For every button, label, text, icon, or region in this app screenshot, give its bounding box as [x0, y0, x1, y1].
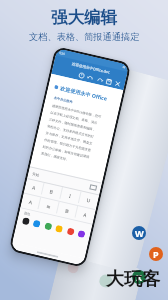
button[interactable]: Toolbar action — [77, 71, 85, 79]
staticText: 件的管理。我们致力于为您提供更 — [44, 138, 91, 152]
staticText: A — [82, 212, 88, 219]
button[interactable]: Colour swatch — [55, 225, 63, 233]
staticText: A — [31, 184, 37, 192]
staticText: 永中办公软件 — [53, 96, 74, 104]
staticText: A — [28, 199, 33, 207]
staticText: U — [86, 197, 91, 205]
button[interactable]: Toolbar action — [113, 79, 121, 87]
button[interactable]: Colour swatch — [66, 227, 75, 236]
button[interactable]: Open W app — [132, 226, 146, 240]
button[interactable]: Format option — [60, 187, 81, 205]
button[interactable]: Format option — [41, 183, 62, 201]
staticText: 欢迎使用永中Office.doc — [71, 61, 111, 75]
button[interactable]: Format option — [20, 193, 40, 211]
staticText: 三种文件，随时随地查看和编辑， — [48, 117, 96, 132]
staticText: 大玩客 — [106, 268, 160, 291]
staticText: 以在手机上处理文档、表格、演示 — [50, 110, 98, 125]
staticText: W — [135, 227, 144, 239]
button[interactable]: Colour swatch — [77, 230, 86, 238]
staticText: ≡ — [46, 203, 52, 210]
staticText: 9:30 — [59, 51, 65, 56]
staticText: 强大编辑 — [51, 7, 117, 28]
button[interactable]: Toolbar action — [96, 75, 104, 83]
staticText: 感谢您使用永中Office移动版，您可 — [52, 104, 102, 119]
button[interactable]: Format option — [78, 191, 99, 209]
staticText: P — [153, 248, 159, 260]
staticText: 开与保存，支持本地文件、网盘文 — [45, 131, 93, 146]
button[interactable]: Format option — [56, 202, 77, 219]
button[interactable]: Colour swatch — [44, 222, 52, 231]
staticText: 开始 — [32, 172, 39, 177]
button[interactable]: Toolbar action — [86, 73, 94, 81]
staticText: 轻松办公。支持多种格式文件的打 — [47, 124, 95, 139]
staticText: I — [68, 193, 72, 200]
staticText: 欢迎使用永中 Office — [60, 84, 108, 102]
staticText: 好的办公体验，如有任何建议请联 — [42, 145, 90, 159]
button[interactable]: Toolbar action — [104, 77, 113, 85]
staticText: ▮▮ — [122, 66, 126, 69]
button[interactable]: Colour swatch — [22, 217, 30, 225]
staticText: 颜色 — [24, 211, 31, 217]
button[interactable]: Format option — [75, 206, 96, 224]
button[interactable]: Format option — [24, 179, 43, 196]
staticText: X — [136, 271, 143, 283]
staticText: 文档、表格、简报通通搞定 — [29, 31, 140, 43]
staticText: ≣ — [64, 207, 70, 214]
staticText: B — [49, 188, 54, 196]
button[interactable]: Colour swatch — [32, 219, 41, 228]
button[interactable]: Open X app — [132, 270, 146, 284]
staticText: 系我们，感谢支持。 — [41, 151, 70, 162]
button[interactable]: Open P app — [149, 247, 163, 261]
button[interactable]: Format option — [38, 197, 59, 215]
